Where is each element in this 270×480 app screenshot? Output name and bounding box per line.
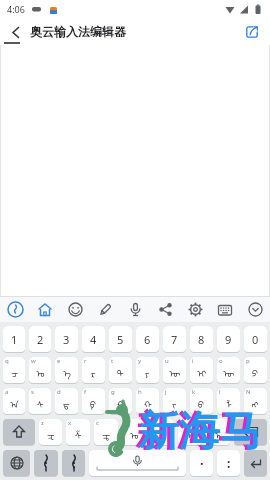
staticText: ᠠ: [10, 395, 19, 411]
staticText: 3: [63, 332, 70, 347]
button[interactable]: 0: [244, 326, 267, 352]
button[interactable]: a: [3, 388, 25, 414]
button[interactable]: h: [136, 388, 159, 414]
button[interactable]: N: [244, 388, 267, 414]
staticText: r: [84, 357, 87, 365]
button[interactable]: d: [55, 388, 78, 414]
staticText: n: [180, 419, 184, 427]
button[interactable]: g: [109, 388, 132, 414]
staticText: 4: [90, 332, 97, 347]
button[interactable]: k: [190, 388, 213, 414]
button[interactable]: o: [217, 357, 240, 383]
button[interactable]: [60, 297, 90, 322]
button[interactable]: y: [136, 357, 159, 383]
staticText: ᠪ: [198, 395, 205, 411]
button[interactable]: s: [29, 388, 51, 414]
staticText: ᠤ: [130, 426, 139, 442]
button[interactable]: [89, 450, 186, 476]
staticText: ᠭ: [117, 395, 125, 411]
button[interactable]: f: [82, 388, 105, 414]
staticText: ᠡ: [63, 364, 71, 380]
staticText: ᠳ: [63, 395, 70, 411]
staticText: 4:06: [7, 3, 25, 15]
button[interactable]: n: [178, 419, 202, 445]
staticText: ᠹ: [90, 395, 97, 411]
button[interactable]: [0, 297, 30, 322]
button[interactable]: 9: [217, 326, 240, 352]
button[interactable]: [240, 297, 270, 322]
button[interactable]: [3, 450, 30, 476]
staticText: i: [192, 357, 194, 365]
staticText: x: [68, 419, 72, 427]
button[interactable]: 7: [163, 326, 186, 352]
button[interactable]: c: [94, 419, 118, 445]
staticText: 6: [144, 332, 151, 347]
staticText: c: [96, 419, 99, 427]
button[interactable]: [30, 297, 60, 322]
button[interactable]: 2: [29, 326, 51, 352]
button[interactable]: 1: [3, 326, 25, 352]
staticText: ᠣ: [36, 364, 45, 380]
button[interactable]: q: [3, 357, 25, 383]
staticText: ᠬ: [144, 395, 152, 411]
button[interactable]: 6: [136, 326, 159, 352]
staticText: ᠱ: [75, 426, 82, 442]
staticText: 2: [37, 332, 44, 347]
staticText: ᠴ: [11, 364, 18, 380]
button[interactable]: 3: [55, 326, 78, 352]
staticText: ᠷ: [91, 364, 96, 380]
staticText: t: [111, 357, 114, 365]
button[interactable]: 4: [82, 326, 105, 352]
button[interactable]: w: [29, 357, 51, 383]
button[interactable]: t: [109, 357, 132, 383]
staticText: ᠦ: [169, 364, 181, 380]
button[interactable]: z: [39, 419, 62, 445]
button[interactable]: i: [190, 357, 213, 383]
button[interactable]: [3, 419, 35, 445]
staticText: ᠶ: [145, 364, 150, 380]
staticText: s: [31, 388, 34, 396]
button[interactable]: u: [163, 357, 186, 383]
button[interactable]: [150, 297, 180, 322]
button[interactable]: ·: [190, 450, 213, 476]
staticText: ·: [200, 454, 204, 472]
staticText: 7: [171, 332, 178, 347]
button[interactable]: m: [206, 419, 230, 445]
staticText: 8: [198, 332, 205, 347]
button[interactable]: l: [217, 388, 240, 414]
button[interactable]: [34, 450, 58, 476]
button[interactable]: [90, 297, 120, 322]
button[interactable]: [180, 297, 210, 322]
button[interactable]: r: [82, 357, 105, 383]
staticText: d: [57, 388, 61, 396]
button[interactable]: [210, 297, 240, 322]
button[interactable]: [120, 297, 150, 322]
button[interactable]: x: [66, 419, 90, 445]
staticText: h: [138, 388, 142, 396]
button[interactable]: j: [163, 388, 186, 414]
button[interactable]: [244, 450, 267, 476]
staticText: a: [5, 388, 9, 396]
staticText: q: [5, 357, 9, 365]
button[interactable]: :: [217, 450, 240, 476]
staticText: p: [246, 357, 250, 365]
button[interactable]: 8: [190, 326, 213, 352]
button[interactable]: p: [244, 357, 267, 383]
staticText: y: [138, 357, 142, 365]
button[interactable]: b: [150, 419, 174, 445]
staticText: w: [31, 357, 36, 365]
button[interactable]: [240, 20, 264, 44]
button[interactable]: v: [122, 419, 146, 445]
button[interactable]: e: [55, 357, 78, 383]
button[interactable]: [6, 22, 26, 42]
staticText: b: [152, 419, 156, 427]
staticText: z: [41, 419, 44, 427]
button[interactable]: 5: [109, 326, 132, 352]
staticText: o: [219, 357, 223, 365]
button[interactable]: [62, 450, 85, 476]
button[interactable]: [234, 419, 267, 445]
staticText: 新海马: [138, 406, 261, 458]
staticText: f: [84, 388, 87, 396]
staticText: m: [208, 419, 214, 427]
